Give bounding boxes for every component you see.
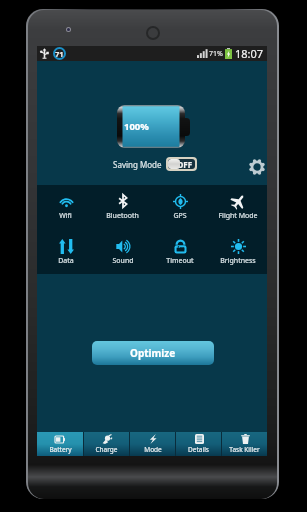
button[interactable]: OFF [166,157,197,171]
staticText: 18:07 [235,46,264,61]
button[interactable]: 1m [151,229,209,274]
staticText: Timeout [166,256,194,266]
staticText: 71% [209,49,223,59]
button[interactable]: Task Killer [222,432,267,456]
staticText: Brightness [220,256,256,266]
staticText: 1m [177,245,185,252]
staticText: Wifi [59,211,72,221]
button[interactable]: Data [37,229,94,274]
button[interactable]: Battery [37,432,83,456]
button[interactable]: Optimize [92,341,214,365]
staticText: Bluetooth [106,211,139,221]
staticText: OFF [177,159,193,169]
staticText: GPS [173,211,187,221]
staticText: Battery [49,445,72,454]
staticText: Task Killer [229,445,260,454]
button[interactable]: Brightness [209,229,267,274]
button[interactable]: Sound [94,229,151,274]
button[interactable]: GPS [151,185,209,229]
staticText: 71 [55,49,64,59]
button[interactable]: Wifi [37,185,94,229]
button[interactable]: Details [176,432,221,456]
button[interactable]: Settings [248,158,266,176]
staticText: Charge [95,445,118,454]
staticText: Saving Mode [113,159,162,170]
staticText: Sound [112,256,134,266]
staticText: Flight Mode [218,211,258,221]
button[interactable]: Flight Mode [209,185,267,229]
staticText: Data [58,256,74,266]
staticText: Details [188,445,209,454]
button[interactable]: Mode [130,432,175,456]
staticText: Mode [144,445,162,454]
button[interactable]: Charge [84,432,129,456]
button[interactable]: Bluetooth [94,185,151,229]
staticText: Optimize [130,346,176,360]
staticText: 100% [124,120,149,133]
